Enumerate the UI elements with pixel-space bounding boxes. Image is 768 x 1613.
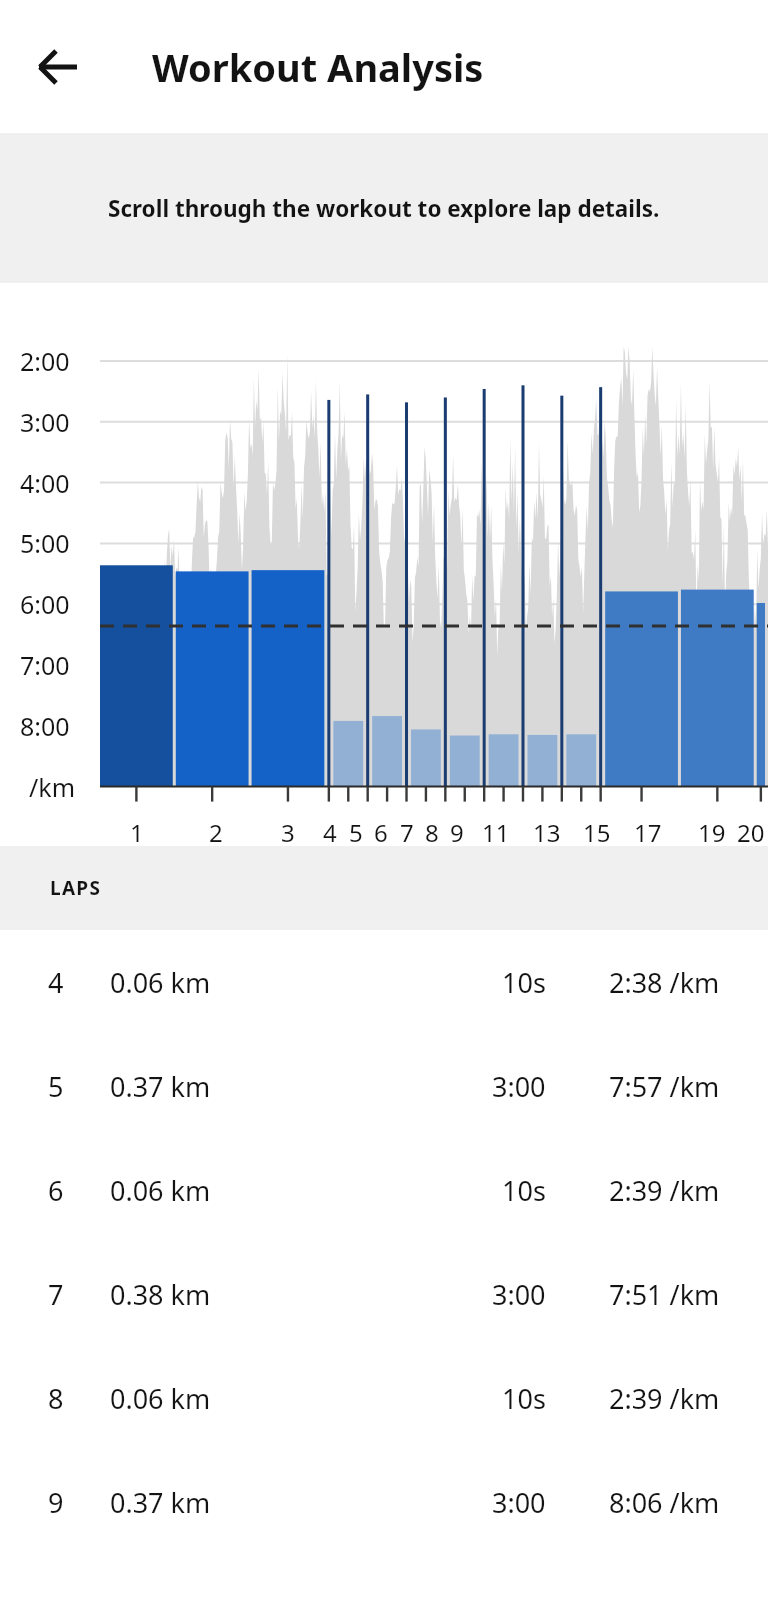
staticText: 15 — [583, 816, 611, 849]
staticText: 6:00 — [20, 587, 70, 621]
staticText: 3:00 — [492, 1484, 546, 1521]
staticText: Workout Analysis — [152, 41, 484, 93]
staticText: 11 — [482, 816, 510, 849]
staticText: LAPS — [50, 875, 102, 901]
staticText: 17 — [634, 816, 662, 849]
staticText: 5 — [349, 816, 363, 849]
staticText: /km — [29, 770, 76, 804]
staticText: 19 — [698, 816, 726, 849]
staticText: 6 — [48, 1172, 64, 1209]
staticText: 7 — [400, 816, 414, 849]
staticText: 9 — [450, 816, 464, 849]
staticText: 0.06 km — [110, 964, 211, 1001]
staticText: 2:39 /km — [609, 1172, 720, 1209]
staticText: 10s — [502, 964, 546, 1001]
button[interactable]: 7 — [0, 1242, 768, 1346]
staticText: 0.06 km — [110, 1380, 211, 1417]
button[interactable]: 5 — [0, 1034, 768, 1138]
staticText: 5 — [48, 1068, 64, 1105]
staticText: 3:00 — [492, 1068, 546, 1105]
button[interactable]: 4 — [0, 930, 768, 1034]
button[interactable]: Back — [20, 29, 96, 105]
staticText: 0.37 km — [110, 1068, 211, 1105]
staticText: 0.37 km — [110, 1484, 211, 1521]
button[interactable]: 6 — [0, 1138, 768, 1242]
staticText: 3:00 — [492, 1276, 546, 1313]
staticText: 9 — [48, 1484, 64, 1521]
staticText: 8:06 /km — [609, 1484, 720, 1521]
staticText: 2:38 /km — [609, 964, 720, 1001]
staticText: 6 — [374, 816, 388, 849]
staticText: 13 — [533, 816, 561, 849]
button[interactable]: 8 — [0, 1346, 768, 1450]
staticText: 2:00 — [20, 344, 70, 378]
staticText: 0.38 km — [110, 1276, 211, 1313]
staticText: 2:39 /km — [609, 1380, 720, 1417]
staticText: 1 — [130, 816, 144, 849]
staticText: 10s — [502, 1172, 546, 1209]
staticText: 4 — [48, 964, 64, 1001]
staticText: 7 — [48, 1276, 64, 1313]
staticText: 2 — [209, 816, 223, 849]
staticText: 3:00 — [20, 405, 70, 439]
staticText: 5:00 — [20, 526, 70, 560]
staticText: 4 — [323, 816, 337, 849]
staticText: 7:00 — [20, 648, 70, 682]
staticText: 8 — [425, 816, 439, 849]
button[interactable]: 9 — [0, 1450, 768, 1554]
staticText: 8:00 — [20, 709, 70, 743]
staticText: 10s — [502, 1380, 546, 1417]
staticText: 7:51 /km — [609, 1276, 720, 1313]
staticText: 4:00 — [20, 466, 70, 500]
staticText: 0.06 km — [110, 1172, 211, 1209]
staticText: 8 — [48, 1380, 64, 1417]
staticText: 3 — [281, 816, 295, 849]
staticText: 7:57 /km — [609, 1068, 720, 1105]
staticText: 20 — [737, 816, 765, 849]
staticText: Scroll through the workout to explore la… — [108, 193, 660, 224]
